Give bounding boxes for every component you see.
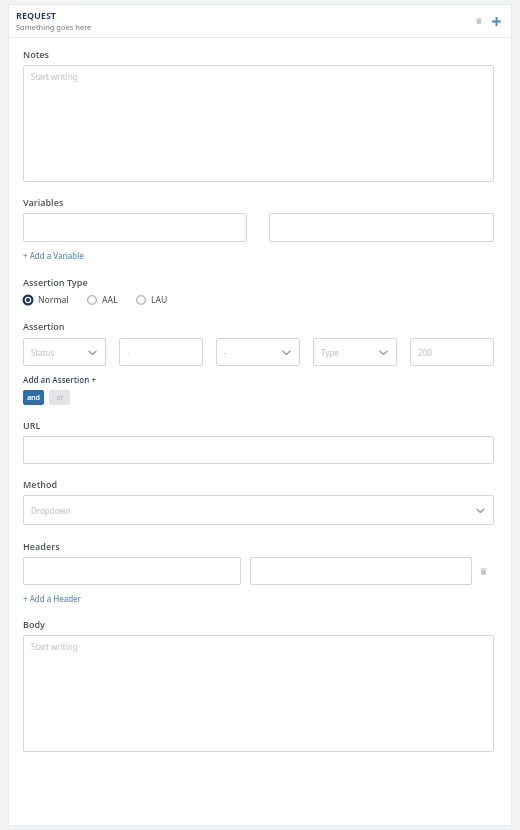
button[interactable]: Add request xyxy=(488,13,504,29)
button[interactable]: or xyxy=(49,390,70,405)
staticText: and xyxy=(27,393,40,403)
button[interactable]: Add an Assertion + xyxy=(23,374,96,385)
staticText: Start writing xyxy=(31,71,78,82)
staticText: 200 xyxy=(418,347,432,358)
button[interactable]: Type xyxy=(313,338,397,366)
staticText: Notes xyxy=(23,48,50,60)
button[interactable] xyxy=(23,557,241,585)
staticText: or xyxy=(56,393,64,403)
button[interactable]: - xyxy=(216,338,300,366)
button[interactable]: - xyxy=(119,338,203,366)
staticText: LAU xyxy=(151,294,168,306)
staticText: Status xyxy=(31,347,55,358)
button[interactable]: LAU xyxy=(136,294,168,306)
staticText: AAL xyxy=(102,294,118,306)
staticText: URL xyxy=(23,419,41,431)
staticText: Something goes here xyxy=(16,22,92,32)
staticText: Normal xyxy=(38,294,69,306)
staticText: - xyxy=(224,347,227,358)
staticText: Body xyxy=(23,618,46,630)
staticText: - xyxy=(127,347,130,358)
button[interactable] xyxy=(23,436,494,464)
button[interactable] xyxy=(23,213,247,242)
button[interactable]: Delete request xyxy=(471,13,487,29)
button[interactable]: Normal xyxy=(23,294,69,306)
button[interactable]: + Add a Header xyxy=(23,593,81,604)
staticText: Start writing xyxy=(31,641,78,652)
button[interactable]: Start writing xyxy=(23,65,494,182)
staticText: Headers xyxy=(23,540,60,552)
staticText: Method xyxy=(23,478,58,490)
button[interactable]: Delete header xyxy=(472,560,494,582)
button[interactable] xyxy=(250,557,472,585)
button[interactable]: Start writing xyxy=(23,635,494,752)
staticText: Dropdown xyxy=(31,505,71,516)
button[interactable]: + Add a Variable xyxy=(23,250,84,261)
button[interactable]: Status xyxy=(23,338,106,366)
button[interactable]: 200 xyxy=(410,338,494,366)
staticText: Assertion Type xyxy=(23,276,88,288)
button[interactable]: AAL xyxy=(87,294,118,306)
button[interactable]: and xyxy=(23,390,44,405)
button[interactable]: Dropdown xyxy=(23,495,494,525)
staticText: Assertion xyxy=(23,320,65,332)
staticText: Type xyxy=(321,347,339,358)
button[interactable] xyxy=(269,213,494,242)
staticText: Variables xyxy=(23,196,64,208)
staticText: REQUEST xyxy=(16,9,57,21)
